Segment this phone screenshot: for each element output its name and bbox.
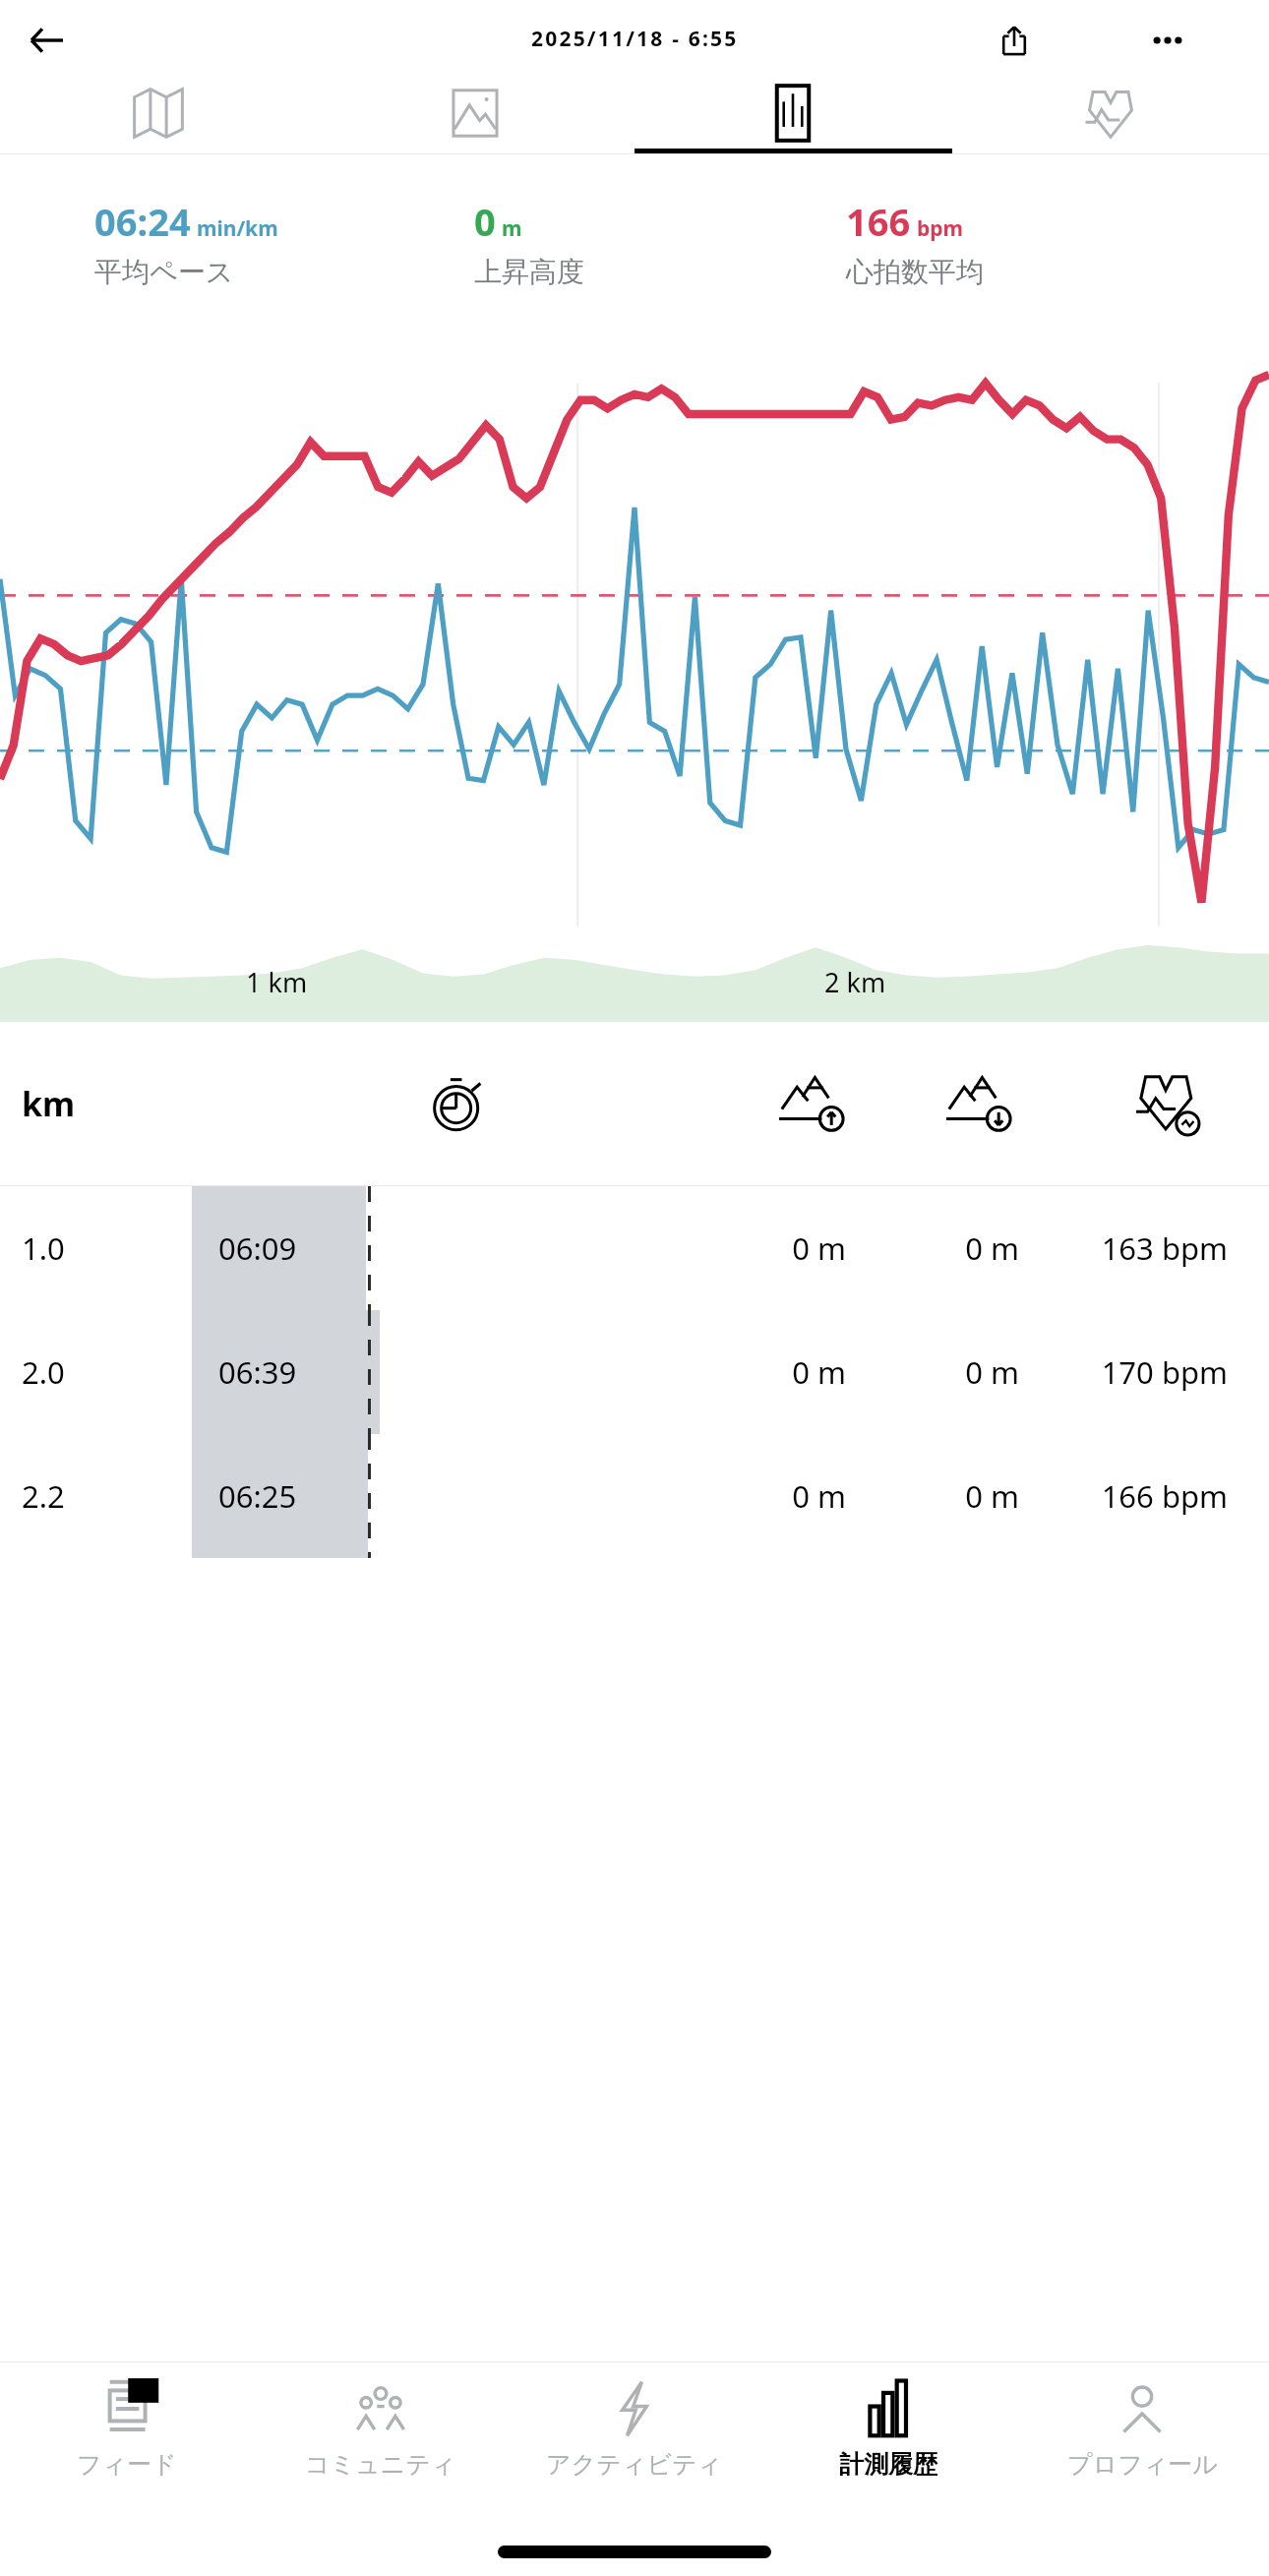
staticText: 166 — [846, 196, 911, 247]
staticText: 0 — [474, 196, 496, 247]
staticText: 2025/11/18 - 6:55 — [531, 25, 739, 53]
staticText: 心拍数平均 — [846, 255, 984, 289]
button[interactable]: アクティビティ — [508, 2363, 761, 2515]
staticText: アクティビティ — [546, 2449, 723, 2480]
staticText: 2.2 — [22, 1475, 65, 1517]
staticText: 2 km — [824, 964, 886, 1000]
staticText: 163 bpm — [1067, 1228, 1228, 1269]
button[interactable]: Share — [984, 10, 1045, 71]
staticText: 1 km — [246, 964, 308, 1000]
staticText: min/km — [197, 214, 278, 243]
staticText: 0 m — [777, 1475, 846, 1517]
staticText: 06:39 — [218, 1351, 297, 1393]
button[interactable]: 2.0 — [0, 1310, 1269, 1434]
staticText: 1.0 — [22, 1228, 65, 1269]
staticText: 0 m — [950, 1228, 1019, 1269]
staticText: bpm — [917, 214, 964, 243]
button[interactable]: Back — [14, 8, 79, 73]
staticText: 06:09 — [218, 1228, 297, 1269]
button[interactable]: Heart rate tab — [951, 80, 1269, 153]
button[interactable]: 2.2 — [0, 1434, 1269, 1558]
staticText: 166 bpm — [1067, 1475, 1228, 1517]
staticText: コミュニティ — [305, 2449, 456, 2480]
staticText: 170 bpm — [1067, 1351, 1228, 1393]
button[interactable]: Charts tab — [634, 80, 951, 153]
button[interactable]: プロフィール — [1015, 2363, 1269, 2515]
button[interactable]: More options — [1137, 10, 1198, 71]
button[interactable]: 計測履歴 — [761, 2363, 1015, 2515]
staticText: 0 m — [950, 1351, 1019, 1393]
button[interactable]: フィード — [0, 2363, 254, 2515]
staticText: 0 m — [777, 1228, 846, 1269]
staticText: km — [22, 1081, 76, 1126]
staticText: プロフィール — [1067, 2449, 1218, 2480]
staticText: フィード — [77, 2449, 177, 2480]
staticText: 計測履歴 — [839, 2449, 937, 2480]
button[interactable]: 1.0 — [0, 1186, 1269, 1310]
staticText: 平均ペース — [94, 255, 234, 289]
staticText: 06:25 — [218, 1475, 297, 1517]
button[interactable]: Map tab — [0, 80, 317, 153]
button[interactable]: コミュニティ — [254, 2363, 508, 2515]
staticText: 06:24 — [94, 196, 191, 247]
button[interactable]: Photos tab — [317, 80, 634, 153]
staticText: 2.0 — [22, 1351, 65, 1393]
staticText: m — [502, 214, 522, 243]
staticText: 上昇高度 — [474, 255, 584, 289]
staticText: 0 m — [777, 1351, 846, 1393]
staticText: 0 m — [950, 1475, 1019, 1517]
